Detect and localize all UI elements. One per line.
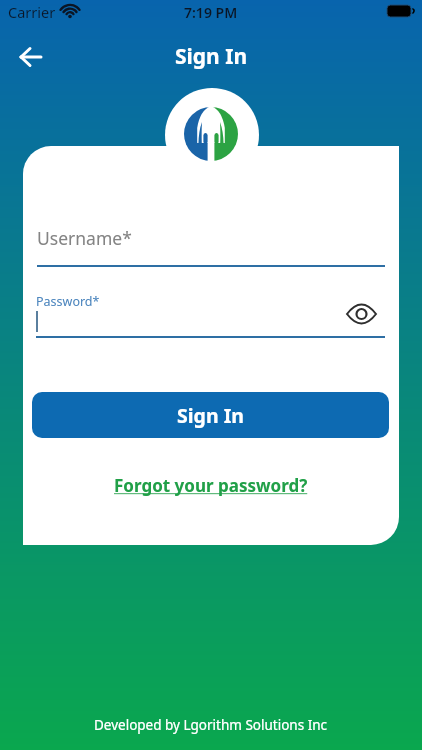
button[interactable] bbox=[20, 48, 42, 66]
button[interactable]: Username* bbox=[37, 226, 132, 250]
button[interactable]: Forgot your password? bbox=[23, 474, 399, 497]
button[interactable] bbox=[347, 304, 376, 324]
staticText: Sign In bbox=[175, 42, 248, 71]
staticText: Developed by Lgorithm Solutions Inc bbox=[94, 716, 328, 734]
staticText: 7:19 PM bbox=[184, 3, 238, 22]
button[interactable]: Password* bbox=[36, 293, 100, 310]
staticText: Carrier bbox=[8, 2, 56, 22]
staticText: Password* bbox=[36, 293, 100, 310]
staticText: Sign In bbox=[177, 402, 244, 429]
staticText: Forgot your password? bbox=[114, 474, 308, 497]
staticText: Username* bbox=[37, 226, 132, 250]
button[interactable]: Sign In bbox=[32, 392, 389, 438]
